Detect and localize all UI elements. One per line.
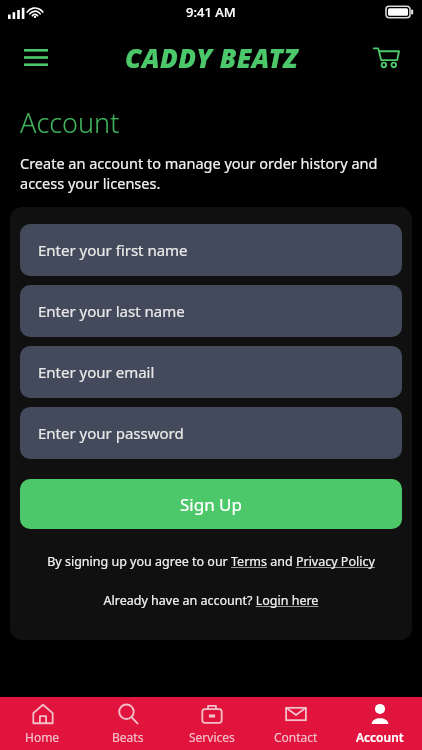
button[interactable]: By signing up you agree to our Terms and… bbox=[20, 553, 402, 570]
button[interactable]: Enter your email bbox=[20, 346, 402, 398]
staticText: Enter your last name bbox=[38, 301, 185, 321]
button[interactable]: Home bbox=[0, 697, 85, 750]
button[interactable]: Enter your last name bbox=[20, 285, 402, 337]
staticText: Enter your password bbox=[38, 423, 184, 443]
staticText: 9:41 AM bbox=[186, 3, 236, 21]
button[interactable]: Menu bbox=[12, 33, 60, 81]
staticText: Services bbox=[189, 729, 235, 745]
staticText: Home bbox=[25, 729, 60, 745]
button[interactable]: Beats bbox=[85, 697, 170, 750]
staticText: Enter your first name bbox=[38, 240, 188, 260]
staticText: Enter your email bbox=[38, 362, 155, 382]
button[interactable]: Cart bbox=[362, 33, 410, 81]
button[interactable]: Account bbox=[338, 697, 422, 750]
button[interactable]: Contact bbox=[254, 697, 338, 750]
button[interactable]: Already have an account? Login here bbox=[20, 592, 402, 609]
staticText: Contact bbox=[274, 729, 318, 745]
button[interactable]: Enter your password bbox=[20, 407, 402, 459]
staticText: Create an account to manage your order h… bbox=[20, 153, 400, 194]
button[interactable]: Sign Up bbox=[20, 479, 402, 529]
staticText: Account bbox=[20, 104, 120, 141]
button[interactable]: Services bbox=[170, 697, 254, 750]
button[interactable]: Enter your first name bbox=[20, 224, 402, 276]
staticText: CADDY BEATZ bbox=[125, 40, 298, 75]
staticText: Beats bbox=[112, 729, 144, 745]
staticText: Account bbox=[356, 729, 404, 745]
staticText: Sign Up bbox=[180, 493, 242, 516]
